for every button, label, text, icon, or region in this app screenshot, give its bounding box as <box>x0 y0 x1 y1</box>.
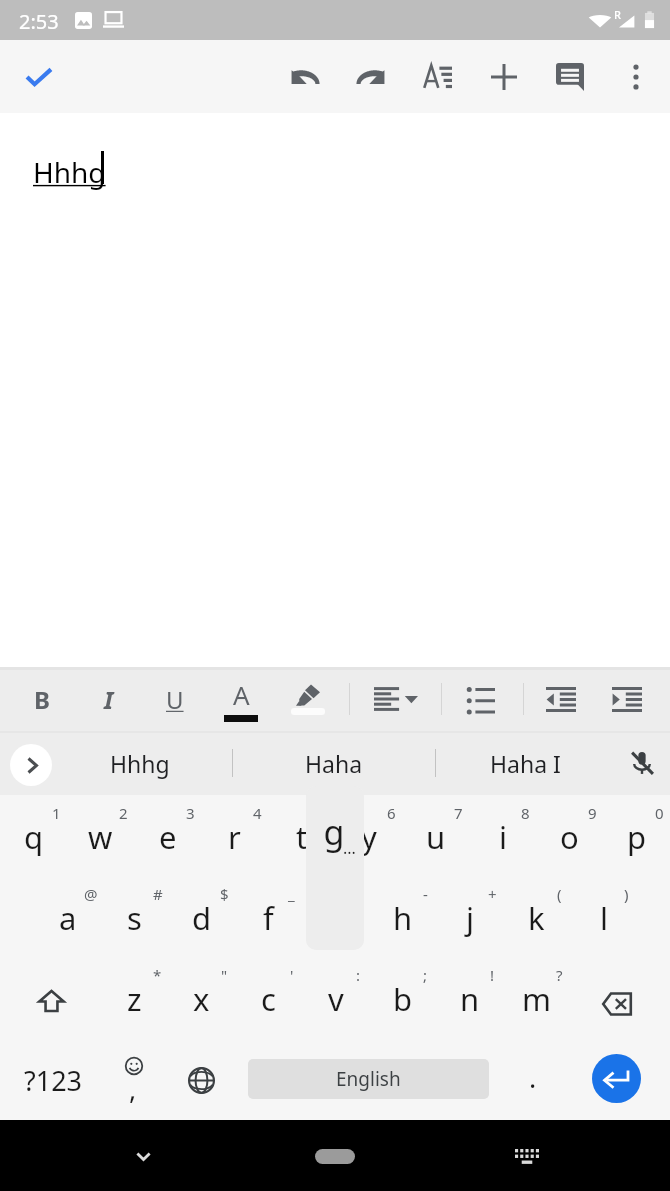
button[interactable]: Backspace <box>569 959 670 1040</box>
staticText: ' <box>290 965 294 985</box>
button[interactable]: m <box>503 960 570 1041</box>
button[interactable]: o <box>536 798 603 879</box>
button[interactable]: Text formatting <box>405 40 471 113</box>
button[interactable]: ?123 <box>13 1040 93 1120</box>
button[interactable]: e <box>134 798 201 879</box>
staticText: z <box>127 978 142 1020</box>
button[interactable]: i <box>469 798 536 879</box>
button[interactable]: Format option <box>9 667 75 731</box>
button[interactable]: v <box>302 960 369 1041</box>
button[interactable]: t <box>268 798 335 879</box>
button[interactable]: Format option <box>594 667 660 731</box>
staticText: ! <box>490 965 495 985</box>
staticText: ?123 <box>24 1062 83 1099</box>
button[interactable]: b <box>369 960 436 1041</box>
button[interactable]: Format option <box>208 667 274 731</box>
staticText: + <box>488 884 497 904</box>
button[interactable]: Change language <box>171 1040 231 1120</box>
button[interactable]: r <box>201 798 268 879</box>
staticText: ( <box>557 884 562 904</box>
button[interactable]: Shift <box>0 959 101 1040</box>
staticText: o <box>560 816 579 858</box>
staticText: ? <box>556 965 563 985</box>
staticText: j <box>466 897 474 939</box>
button[interactable]: Hide keyboard <box>111 1120 175 1191</box>
button[interactable]: a <box>34 879 101 960</box>
button[interactable]: l <box>570 879 637 960</box>
button[interactable]: Voice input off <box>613 731 670 795</box>
staticText: q <box>24 816 44 858</box>
button[interactable]: More options <box>603 40 669 113</box>
button[interactable]: Emoji and comma <box>104 1040 164 1120</box>
button[interactable]: h <box>369 879 436 960</box>
button[interactable]: Insert <box>471 40 537 113</box>
staticText: p <box>627 816 647 858</box>
staticText: 8 <box>521 803 530 823</box>
button[interactable]: Redo <box>338 40 404 113</box>
button[interactable]: Home <box>303 1120 367 1191</box>
staticText: n <box>460 978 480 1020</box>
staticText: ... <box>343 837 356 859</box>
button[interactable]: Haha I <box>437 731 613 795</box>
staticText: # <box>153 884 163 904</box>
staticText: c <box>261 978 276 1020</box>
button[interactable]: Undo <box>272 40 338 113</box>
button[interactable]: Format option <box>142 667 208 731</box>
staticText: * <box>153 965 162 985</box>
staticText: " <box>221 965 228 985</box>
staticText: 6 <box>387 803 396 823</box>
staticText: @ <box>84 884 98 904</box>
button[interactable]: Format option <box>76 667 142 731</box>
staticText: t <box>296 816 308 858</box>
staticText: 2:53 <box>19 8 59 35</box>
staticText: $ <box>220 884 229 904</box>
staticText: l <box>600 897 608 939</box>
button[interactable]: p <box>603 798 670 879</box>
button[interactable]: Format option <box>448 667 514 731</box>
button[interactable]: j <box>436 879 503 960</box>
staticText: f <box>263 897 274 939</box>
staticText: Haha I <box>490 748 561 779</box>
button[interactable]: n <box>436 960 503 1041</box>
button[interactable]: Format option <box>363 667 429 731</box>
staticText: s <box>127 897 142 939</box>
button[interactable]: Format option <box>275 667 341 731</box>
button[interactable]: . <box>503 1040 563 1120</box>
button[interactable]: q <box>0 798 67 879</box>
button[interactable]: Comments <box>537 40 603 113</box>
button[interactable]: u <box>402 798 469 879</box>
button[interactable]: g <box>302 879 369 960</box>
staticText: y <box>361 816 377 858</box>
button[interactable]: k <box>503 879 570 960</box>
staticText: 0 <box>655 803 664 823</box>
button[interactable]: y <box>335 798 402 879</box>
button[interactable]: Done <box>11 40 67 113</box>
staticText: 4 <box>253 803 262 823</box>
button[interactable]: Expand suggestions <box>10 744 52 786</box>
staticText: e <box>159 816 177 858</box>
button[interactable]: Hhhg <box>58 731 222 795</box>
button[interactable]: w <box>67 798 134 879</box>
button[interactable]: Switch keyboard <box>495 1120 559 1191</box>
button[interactable]: English <box>248 1059 489 1099</box>
staticText: , <box>129 1070 137 1107</box>
button[interactable]: f <box>235 879 302 960</box>
staticText: i <box>499 816 507 858</box>
staticText: I <box>104 683 114 716</box>
staticText: ) <box>624 884 629 904</box>
staticText: w <box>88 816 113 858</box>
staticText: x <box>193 978 210 1020</box>
button[interactable]: s <box>101 879 168 960</box>
button[interactable]: Haha <box>234 731 434 795</box>
button[interactable]: c <box>235 960 302 1041</box>
button[interactable]: Enter <box>592 1054 641 1103</box>
button[interactable]: x <box>168 960 235 1041</box>
staticText: R <box>614 7 621 22</box>
button[interactable]: Format option <box>528 667 594 731</box>
staticText: a <box>59 897 77 939</box>
button[interactable]: d <box>168 879 235 960</box>
button[interactable]: z <box>101 960 168 1041</box>
staticText: 9 <box>588 803 597 823</box>
